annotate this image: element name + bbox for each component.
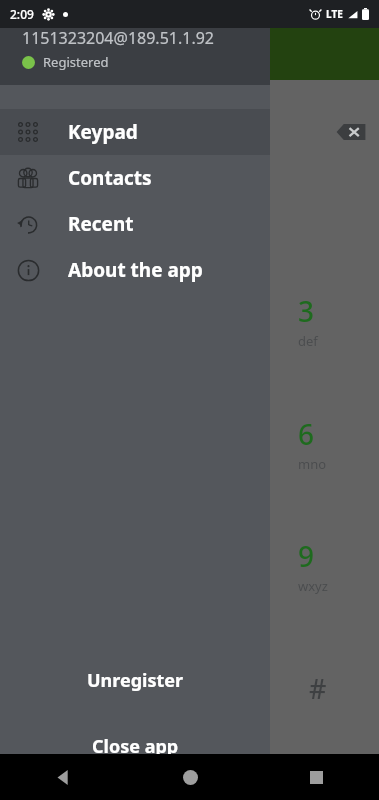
staticText: wxyz — [298, 577, 328, 595]
staticText: LTE — [326, 7, 343, 21]
button[interactable]: 9 — [290, 537, 360, 603]
staticText: Unregister — [87, 668, 184, 693]
button[interactable]: Contacts — [0, 155, 270, 201]
button[interactable]: Recent — [0, 201, 270, 247]
staticText: Contacts — [68, 165, 152, 191]
staticText: 1151323204@189.51.1.92 — [22, 27, 214, 49]
button[interactable]: About the app — [0, 247, 270, 293]
staticText: Registered — [43, 53, 109, 71]
staticText: Keypad — [68, 119, 138, 145]
staticText: About the app — [68, 257, 203, 283]
button[interactable]: # — [295, 665, 341, 711]
staticText: 3 — [298, 292, 315, 330]
button[interactable]: Video call — [296, 752, 344, 800]
staticText: 2:09 — [10, 6, 34, 22]
staticText: mno — [298, 455, 327, 473]
button[interactable]: Backspace — [334, 115, 368, 149]
staticText: def — [298, 332, 318, 350]
button[interactable]: Back — [0, 754, 127, 800]
button[interactable]: 3 — [290, 292, 360, 358]
button[interactable]: Close app — [0, 718, 270, 774]
staticText: 6 — [298, 415, 315, 453]
staticText: Recent — [68, 211, 134, 237]
staticText: # — [309, 670, 327, 707]
button[interactable]: Keypad — [0, 109, 270, 155]
button[interactable]: Home — [127, 754, 253, 800]
button[interactable]: Unregister — [0, 652, 270, 708]
button[interactable]: 6 — [290, 415, 360, 481]
staticText: Close app — [92, 734, 179, 759]
staticText: 9 — [298, 537, 315, 575]
button[interactable]: Recent apps — [253, 754, 379, 800]
